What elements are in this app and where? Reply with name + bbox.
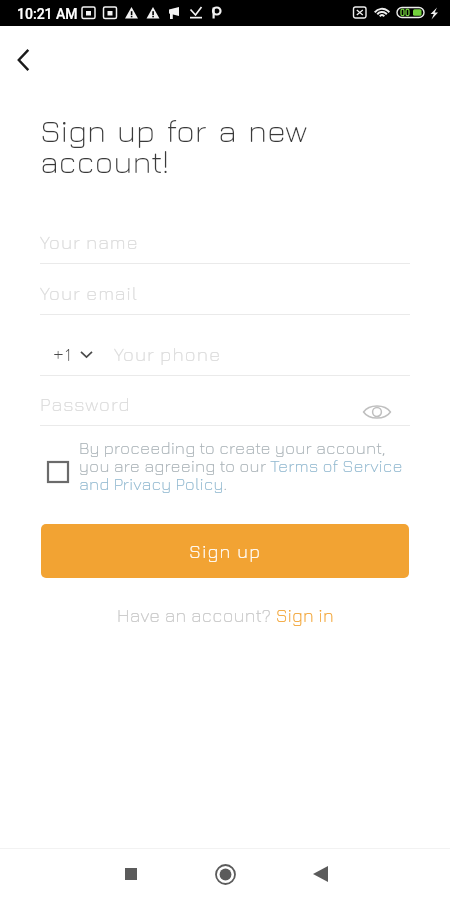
button[interactable]: Show password [347,396,407,428]
staticText: Your email [40,282,138,304]
button[interactable]: Your email [40,280,410,315]
staticText: By proceeding to create your account, yo… [79,438,414,494]
button[interactable]: Back [272,851,366,897]
staticText: Your name [40,231,139,253]
staticText: 10:21 AM [17,6,78,22]
staticText: new [248,111,308,149]
button[interactable]: +1 [40,341,410,376]
staticText: account! [40,142,169,180]
button[interactable]: Have an account? Sign in [109,601,342,630]
staticText: Sign up [189,541,262,562]
staticText: Your phone [114,343,222,365]
button[interactable]: Accept terms and conditions [44,458,72,486]
staticText: +1 [53,342,72,366]
button[interactable]: Sign up [41,524,409,578]
button[interactable]: Back [6,42,42,78]
button[interactable]: Home [178,851,272,897]
button[interactable]: Password [40,391,410,426]
button[interactable]: Your name [40,229,410,264]
staticText: Sign [40,111,106,149]
staticText: a [218,111,237,149]
staticText: up [117,111,156,149]
button[interactable]: Recent apps [84,851,178,897]
staticText: for [167,111,207,149]
staticText: Password [40,393,131,415]
